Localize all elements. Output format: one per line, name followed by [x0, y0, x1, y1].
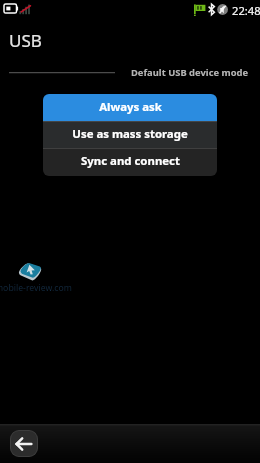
staticText: mobile-review.com: [0, 282, 72, 294]
button[interactable]: Use as mass storage: [43, 121, 217, 148]
staticText: Sync and connect: [81, 153, 180, 169]
staticText: Default USB device mode: [131, 66, 249, 79]
button[interactable]: Sync and connect: [43, 148, 217, 176]
staticText: Use as mass storage: [72, 126, 188, 142]
staticText: USB: [9, 29, 42, 52]
button[interactable]: Back: [10, 430, 38, 457]
staticText: 22:48: [232, 3, 260, 18]
button[interactable]: Always ask: [43, 94, 217, 121]
staticText: Always ask: [99, 99, 162, 115]
